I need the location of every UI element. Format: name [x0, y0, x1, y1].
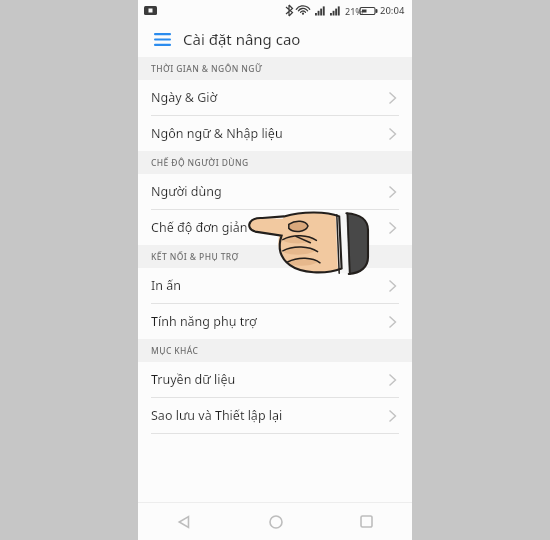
- button[interactable]: Home: [230, 503, 321, 540]
- staticText: Người dùng: [151, 183, 389, 200]
- staticText: Truyền dữ liệu: [151, 371, 389, 388]
- button[interactable]: Recents: [321, 503, 412, 540]
- staticText: In ấn: [151, 277, 389, 294]
- staticText: CHẾ ĐỘ NGƯỜI DÙNG: [151, 157, 249, 169]
- staticText: 21%: [345, 5, 363, 17]
- button[interactable]: Menu: [147, 24, 177, 54]
- button[interactable]: Truyền dữ liệu: [138, 362, 412, 398]
- staticText: Ngôn ngữ & Nhập liệu: [151, 125, 389, 142]
- staticText: Sao lưu và Thiết lập lại: [151, 407, 389, 424]
- button[interactable]: Người dùng: [138, 174, 412, 210]
- button[interactable]: Tính năng phụ trợ: [138, 304, 412, 339]
- button[interactable]: Ngày & Giờ: [138, 80, 412, 116]
- staticText: KẾT NỐI & PHỤ TRỢ: [151, 251, 239, 263]
- button[interactable]: Chế độ đơn giản: [138, 210, 412, 245]
- staticText: Ngày & Giờ: [151, 89, 389, 106]
- button[interactable]: In ấn: [138, 268, 412, 304]
- button[interactable]: Ngôn ngữ & Nhập liệu: [138, 116, 412, 151]
- staticText: Cài đặt nâng cao: [183, 29, 301, 49]
- button[interactable]: Back: [138, 503, 230, 540]
- staticText: 20:04: [380, 4, 405, 17]
- staticText: MỤC KHÁC: [151, 345, 199, 357]
- staticText: Chế độ đơn giản: [151, 219, 389, 236]
- staticText: THỜI GIAN & NGÔN NGỮ: [151, 63, 263, 75]
- staticText: Tính năng phụ trợ: [151, 313, 389, 330]
- button[interactable]: Sao lưu và Thiết lập lại: [138, 398, 412, 434]
